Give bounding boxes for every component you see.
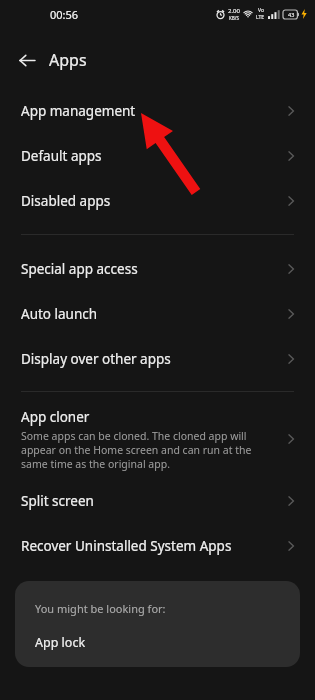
staticText: Split screen [21, 492, 94, 510]
button[interactable]: Split screen [0, 478, 315, 523]
staticText: App lock [35, 634, 86, 651]
staticText: Auto launch [21, 305, 98, 323]
button[interactable]: App management [0, 88, 315, 133]
staticText: 43 [288, 11, 295, 18]
staticText: 2.00 [228, 7, 240, 15]
staticText: Apps [49, 49, 87, 71]
staticText: Vo [258, 7, 264, 14]
staticText: Recover Uninstalled System Apps [21, 537, 232, 555]
staticText: 00:56 [50, 7, 79, 22]
button[interactable]: App cloner [0, 400, 315, 478]
staticText: Disabled apps [21, 192, 111, 210]
staticText: Some apps can be cloned. The cloned app … [21, 429, 277, 471]
button[interactable]: Auto launch [0, 291, 315, 336]
button[interactable]: Default apps [0, 133, 315, 178]
staticText: Special app access [21, 260, 138, 278]
button[interactable]: Special app access [0, 246, 315, 291]
staticText: Default apps [21, 147, 102, 165]
staticText: You might be looking for: [35, 601, 166, 616]
staticText: KB/S [229, 15, 239, 21]
staticText: App management [21, 102, 136, 120]
button[interactable]: Back [10, 43, 44, 77]
button[interactable]: Recover Uninstalled System Apps [0, 523, 315, 568]
button[interactable]: Disabled apps [0, 178, 315, 223]
staticText: LTE [256, 14, 265, 21]
staticText: Display over other apps [21, 350, 171, 368]
button[interactable]: Display over other apps [0, 336, 315, 381]
staticText: App cloner [21, 408, 90, 426]
button[interactable]: App lock [35, 634, 86, 651]
